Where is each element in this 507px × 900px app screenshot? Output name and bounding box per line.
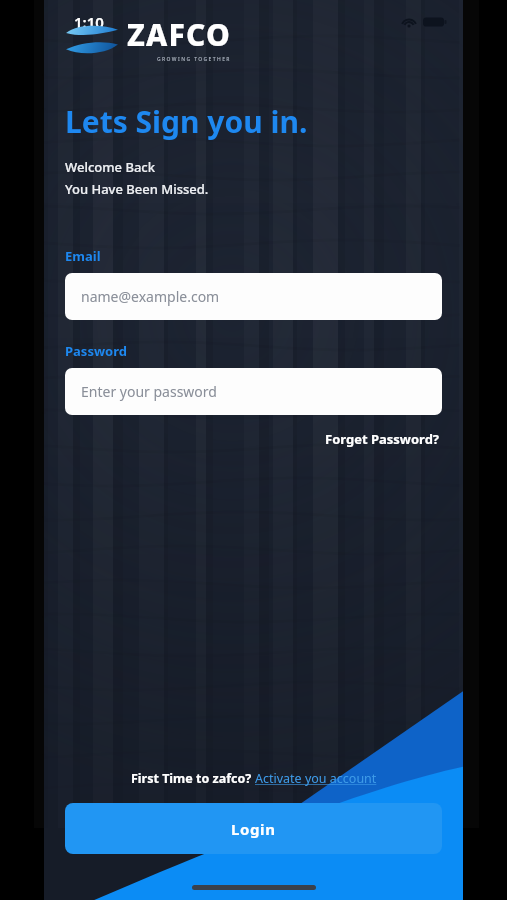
- staticText: Forget Password?: [325, 430, 440, 448]
- staticText: Lets Sign you in.: [65, 101, 308, 142]
- button[interactable]: name@example.com: [65, 273, 442, 320]
- staticText: ZAFCO: [127, 14, 231, 55]
- staticText: Enter your password: [81, 382, 217, 401]
- other: ZAFCO logo: [65, 22, 119, 56]
- button[interactable]: Forget Password?: [323, 428, 442, 450]
- staticText: Login: [231, 819, 276, 839]
- staticText: Password: [65, 342, 127, 360]
- staticText: Welcome Back: [65, 158, 156, 176]
- staticText: 1:10: [74, 12, 104, 32]
- staticText: name@example.com: [81, 287, 220, 306]
- button[interactable]: Enter your password: [65, 368, 442, 415]
- staticText: You Have Been Missed.: [65, 180, 209, 198]
- staticText: Activate you account: [255, 770, 377, 787]
- button[interactable]: Login: [65, 803, 442, 854]
- staticText: Email: [65, 247, 101, 265]
- staticText: First Time to zafco?: [131, 770, 255, 787]
- button[interactable]: Activate you account: [255, 770, 377, 787]
- staticText: GROWING TOGETHER: [157, 56, 231, 63]
